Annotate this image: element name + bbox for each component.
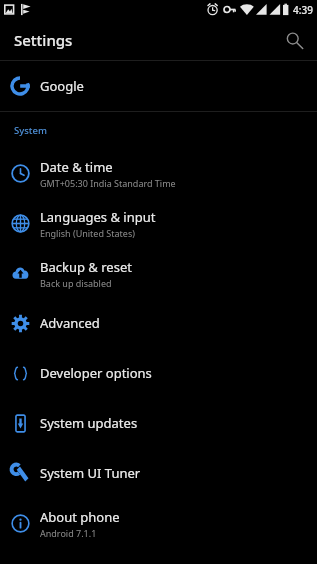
staticText: System bbox=[14, 124, 47, 137]
staticText: System UI Tuner bbox=[40, 464, 141, 482]
button[interactable]: About phone bbox=[0, 498, 317, 548]
button[interactable]: Date & time bbox=[0, 148, 317, 198]
staticText: Languages & input bbox=[40, 208, 156, 226]
staticText: About phone bbox=[40, 508, 120, 526]
button[interactable]: Search bbox=[277, 23, 311, 57]
staticText: Developer options bbox=[40, 364, 152, 382]
button[interactable]: System UI Tuner bbox=[0, 448, 317, 498]
button[interactable]: Backup & reset bbox=[0, 248, 317, 298]
button[interactable]: Advanced bbox=[0, 298, 317, 348]
button[interactable]: Languages & input bbox=[0, 198, 317, 248]
staticText: Settings bbox=[14, 30, 73, 50]
staticText: Google bbox=[40, 77, 84, 95]
staticText: Back up disabled bbox=[40, 277, 112, 289]
staticText: Date & time bbox=[40, 158, 113, 176]
button[interactable]: System updates bbox=[0, 398, 317, 448]
button[interactable]: Developer options bbox=[0, 348, 317, 398]
staticText: Advanced bbox=[40, 314, 100, 332]
staticText: System updates bbox=[40, 414, 138, 432]
staticText: English (United States) bbox=[40, 227, 135, 239]
staticText: GMT+05:30 India Standard Time bbox=[40, 177, 176, 189]
staticText: 4:39 bbox=[293, 3, 313, 17]
staticText: Backup & reset bbox=[40, 258, 132, 276]
button[interactable]: Google bbox=[0, 61, 317, 111]
staticText: Android 7.1.1 bbox=[40, 527, 97, 539]
